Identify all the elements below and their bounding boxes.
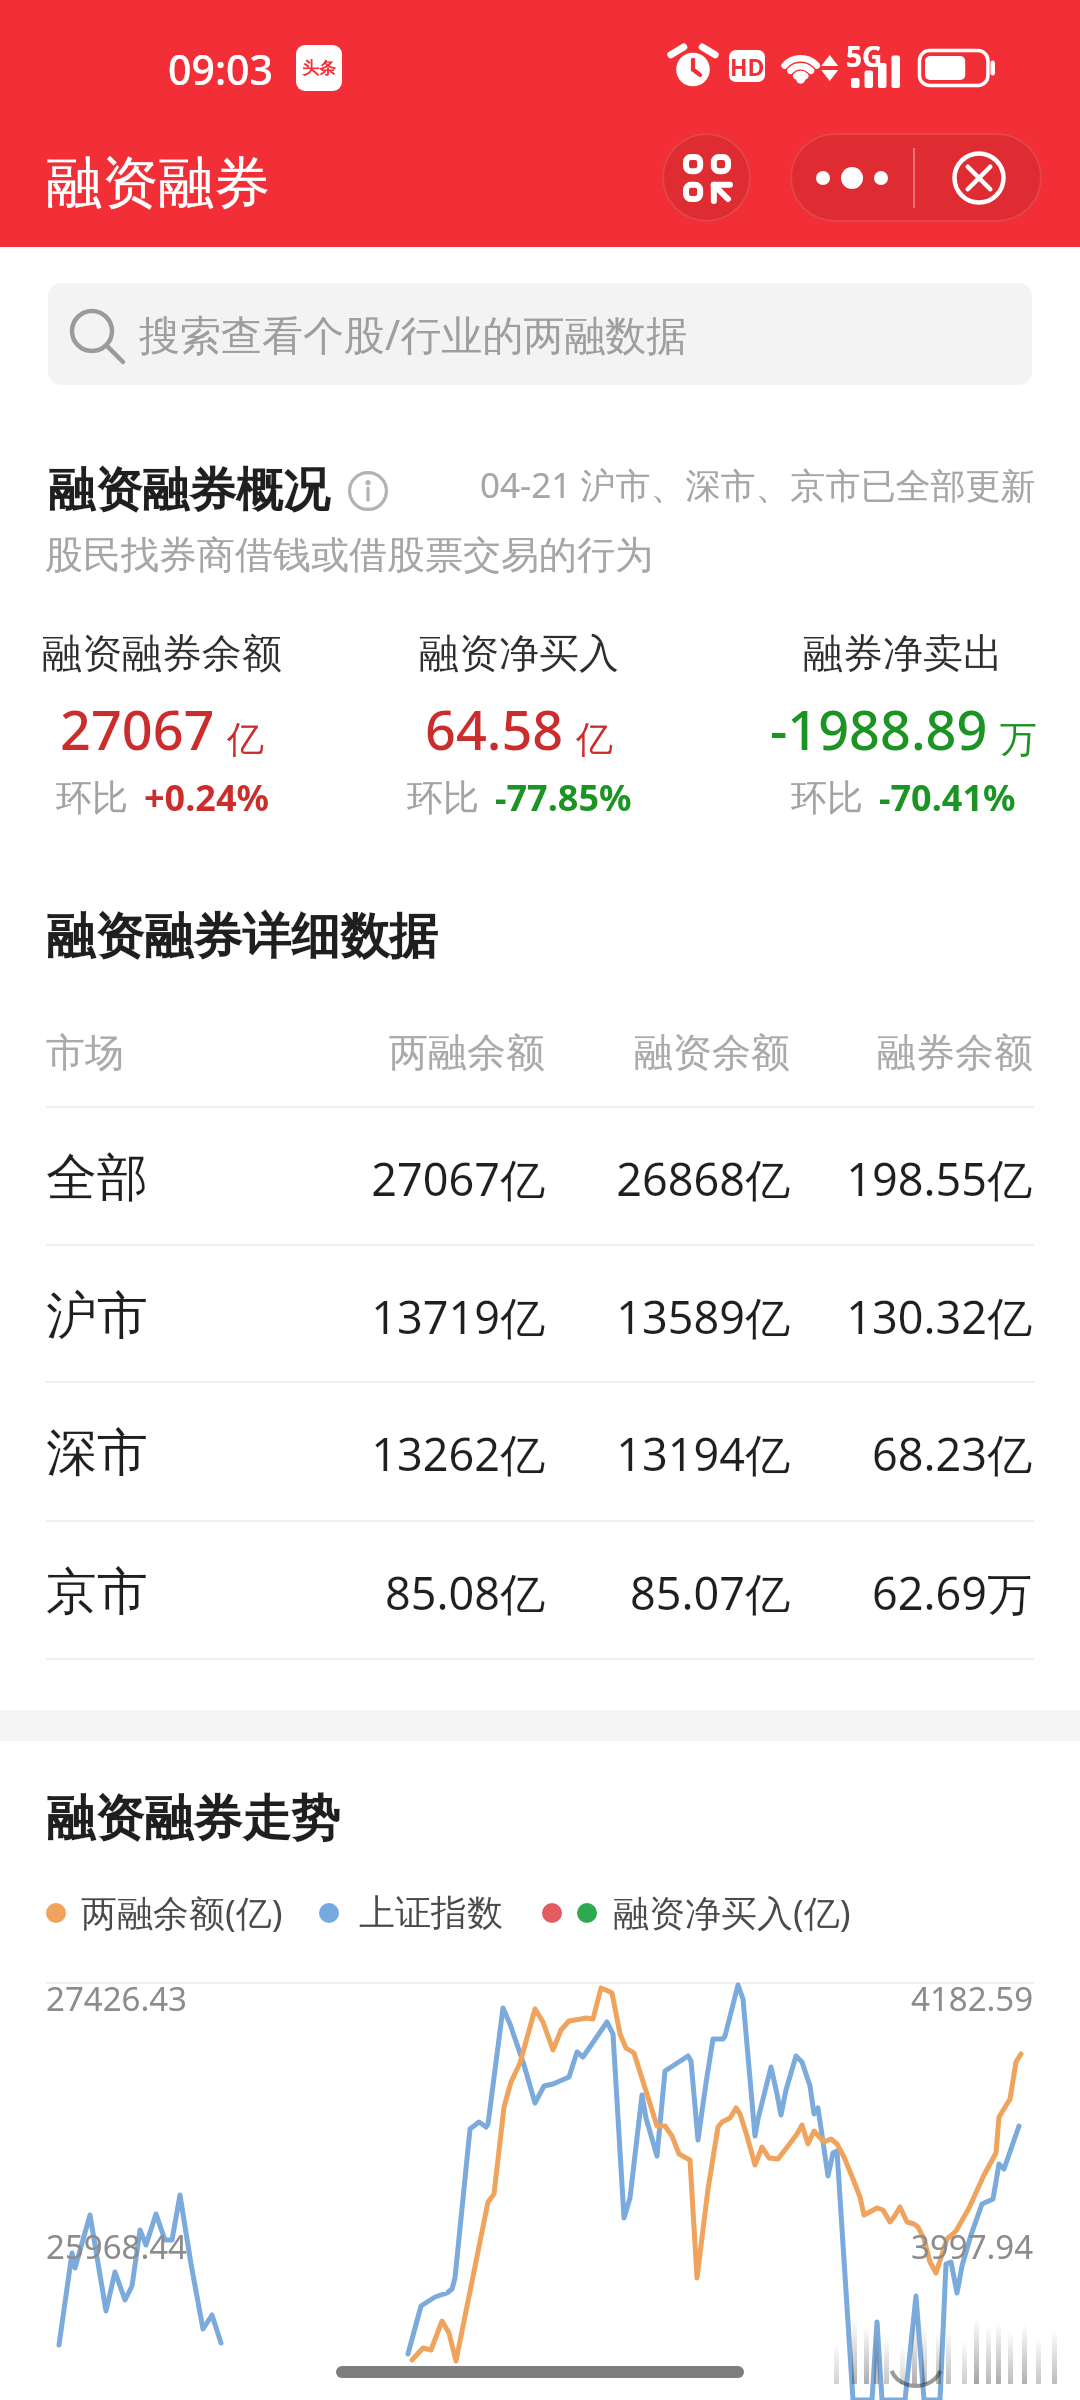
staticText: 融资净买入 (419, 628, 619, 678)
staticText: 搜索查看个股/行业的两融数据 (139, 306, 688, 362)
button[interactable]: 沪市 (0, 1244, 1080, 1382)
button[interactable]: 深市 (0, 1381, 1080, 1519)
staticText: 环比 (407, 775, 479, 820)
staticText: 68.23亿 (790, 1423, 1032, 1484)
staticText: 万 (1000, 716, 1037, 763)
staticText: 27067亿 (300, 1148, 545, 1209)
staticText: 198.55亿 (790, 1148, 1032, 1209)
staticText: 上证指数 (359, 1890, 503, 1935)
staticText: 融资融券余额 (42, 628, 282, 678)
staticText: 融资融券概况 (48, 461, 330, 520)
staticText: +0.24% (144, 773, 269, 822)
button[interactable]: Close (915, 133, 1042, 222)
staticText: 环比 (56, 775, 128, 820)
staticText: 5G (846, 37, 883, 75)
staticText: 融资融券 (46, 148, 270, 219)
staticText: -77.85% (495, 773, 632, 822)
staticText: HD (730, 51, 765, 82)
staticText: 股民找券商借钱或借股票交易的行为 (45, 531, 653, 579)
staticText: 27067 (60, 692, 215, 766)
button[interactable]: 搜索查看个股/行业的两融数据 (48, 283, 1032, 385)
staticText: 09:03 (168, 41, 273, 97)
staticText: 62.69万 (790, 1562, 1032, 1623)
staticText: 3997.94 (911, 2224, 1034, 2269)
staticText: 全部 (46, 1146, 300, 1210)
staticText: 13589亿 (545, 1286, 790, 1347)
staticText: 26868亿 (545, 1148, 790, 1209)
staticText: 13262亿 (300, 1423, 545, 1484)
staticText: 市场 (46, 1028, 300, 1077)
staticText: 25968.44 (46, 2224, 187, 2269)
staticText: 04-21 沪市、深市、京市已全部更新 (480, 461, 1036, 509)
staticText: 京市 (46, 1560, 300, 1624)
staticText: 沪市 (46, 1284, 300, 1348)
staticText: 两融余额 (300, 1028, 545, 1077)
staticText: 融资余额 (545, 1028, 790, 1077)
button[interactable]: More options (790, 133, 913, 222)
staticText: 两融余额(亿) (81, 1888, 283, 1937)
staticText: 融券余额 (790, 1028, 1033, 1077)
staticText: 85.08亿 (300, 1562, 545, 1623)
staticText: -70.41% (879, 773, 1016, 822)
staticText: 亿 (576, 716, 613, 763)
staticText: 64.58 (425, 692, 564, 766)
staticText: 13719亿 (300, 1286, 545, 1347)
staticText: 融资净买入(亿) (613, 1888, 851, 1937)
button[interactable]: Mini program menu (662, 133, 751, 222)
staticText: 融资融券走势 (46, 1788, 340, 1850)
button[interactable]: 京市 (0, 1520, 1080, 1658)
staticText: 85.07亿 (545, 1562, 790, 1623)
staticText: 环比 (791, 775, 863, 820)
staticText: 融资融券详细数据 (46, 906, 438, 968)
staticText: 融券净卖出 (803, 628, 1003, 678)
staticText: 130.32亿 (790, 1286, 1032, 1347)
staticText: -1988.89 (770, 692, 988, 766)
staticText: 13194亿 (545, 1423, 790, 1484)
staticText: 头条 (302, 58, 336, 79)
staticText: 深市 (46, 1421, 300, 1485)
button[interactable]: 全部 (0, 1106, 1080, 1244)
staticText: 亿 (227, 716, 264, 763)
staticText: 4182.59 (911, 1976, 1034, 2021)
staticText: 27426.43 (46, 1976, 187, 2021)
